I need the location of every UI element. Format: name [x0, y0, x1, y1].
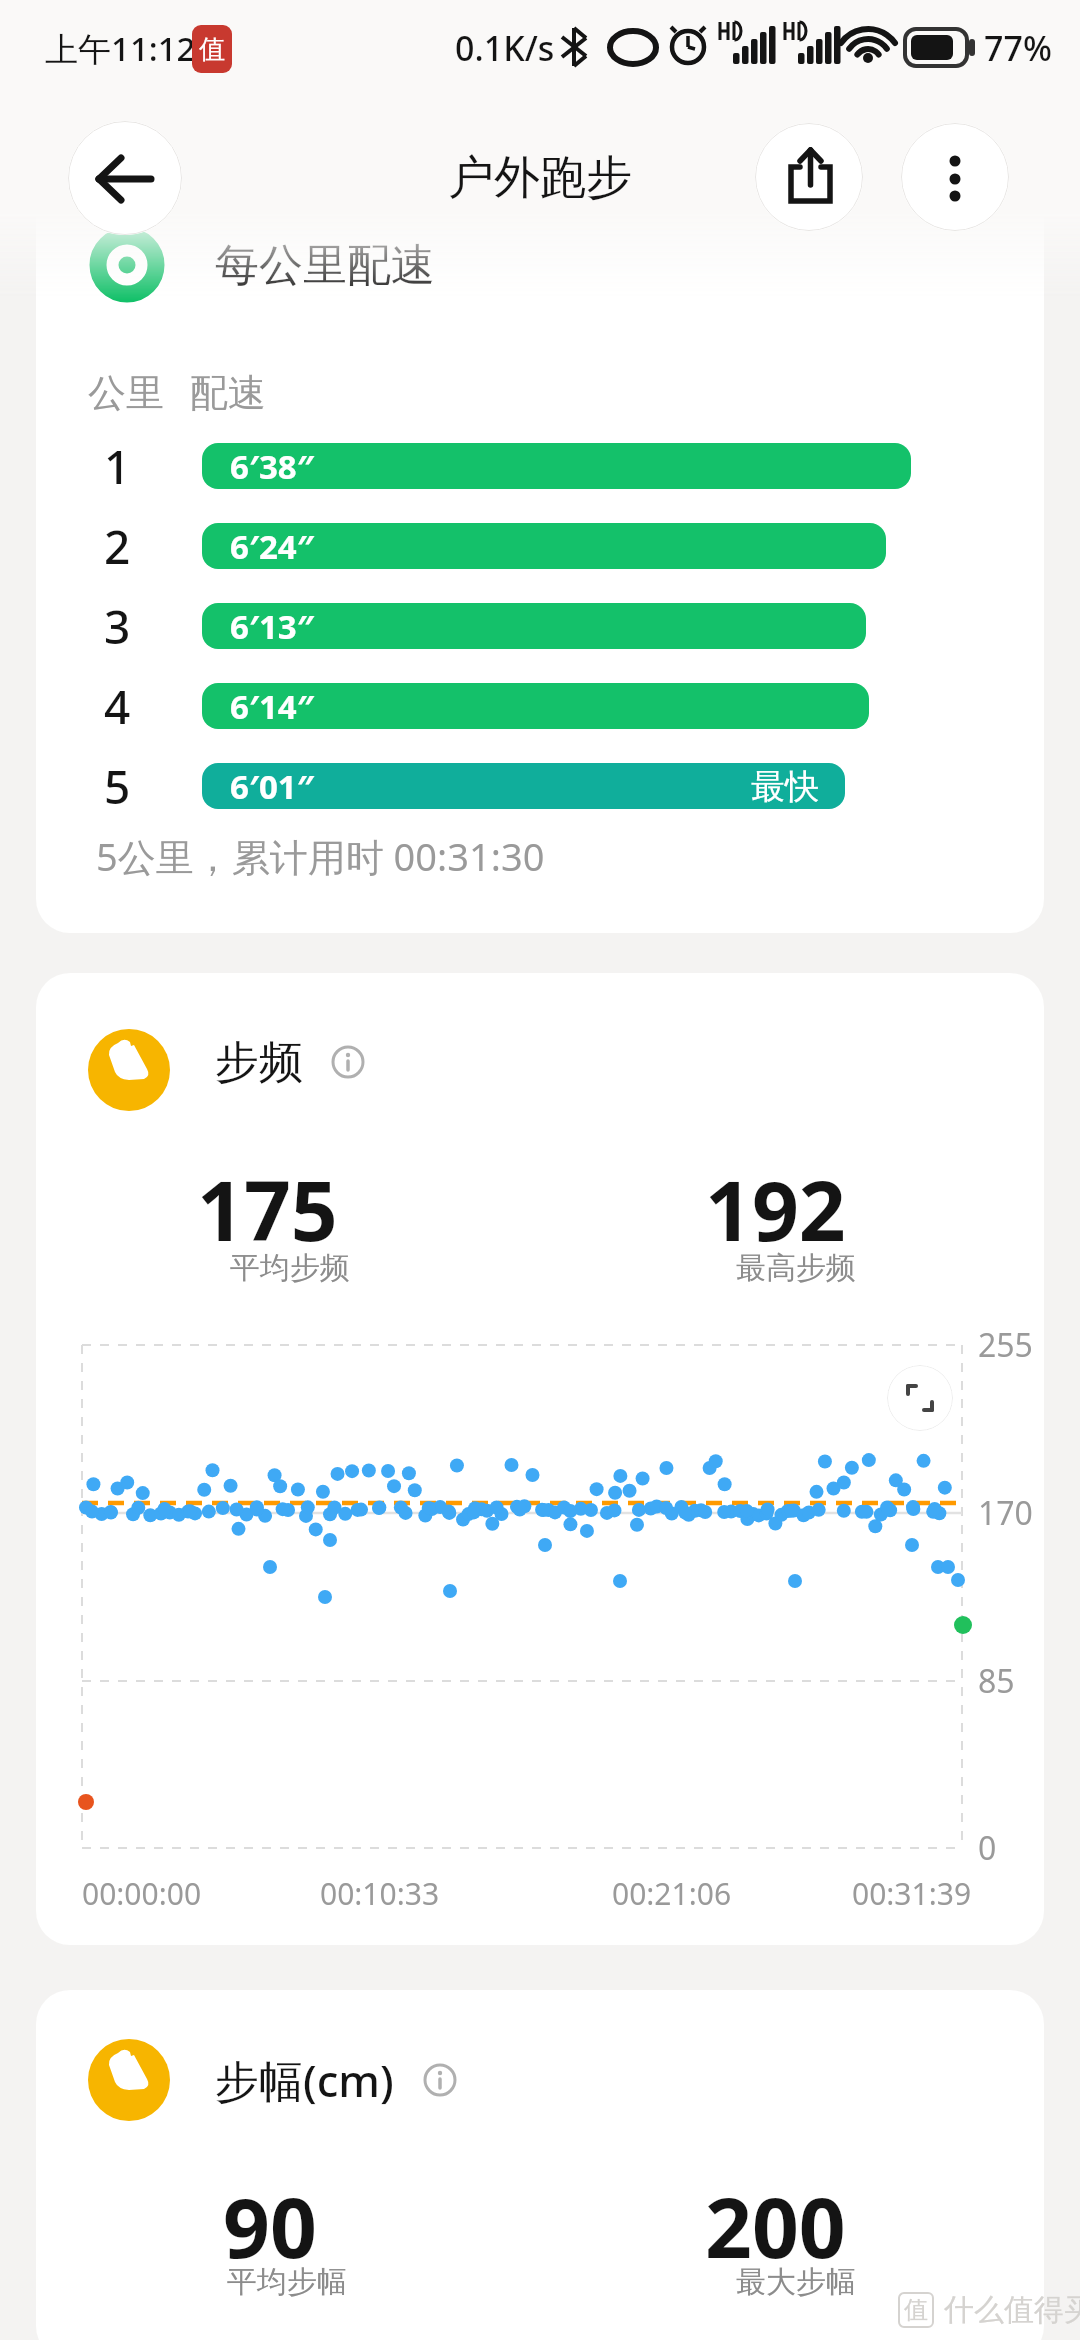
staticText: 值	[199, 33, 225, 66]
staticText: 平均步频	[230, 1249, 350, 1287]
staticText: 4	[104, 675, 131, 738]
button[interactable]	[326, 1040, 370, 1084]
staticText: 0.1K/s	[455, 25, 555, 71]
staticText: 5	[104, 755, 131, 818]
staticText: 192	[705, 1153, 846, 1243]
staticText: 上午11:12	[45, 26, 196, 71]
staticText: 00:31:39	[852, 1873, 972, 1914]
staticText: 什么值得买	[944, 2291, 1080, 2329]
button[interactable]: 6′38″	[202, 443, 911, 489]
staticText: 平均步幅	[227, 2263, 347, 2301]
button[interactable]	[901, 123, 1009, 231]
staticText: 6′13″	[230, 604, 314, 649]
staticText: 00:10:33	[320, 1873, 440, 1914]
staticText: 175	[197, 1153, 338, 1243]
button[interactable]	[68, 121, 182, 235]
button[interactable]: 6′24″	[202, 523, 886, 569]
button[interactable]	[755, 123, 863, 231]
staticText: 85	[978, 1659, 1015, 1703]
staticText: 2	[104, 515, 131, 578]
staticText: 6′38″	[230, 444, 314, 489]
staticText: 6′24″	[230, 524, 314, 569]
staticText: 户外跑步	[448, 149, 632, 207]
button[interactable]	[418, 2058, 462, 2102]
staticText: 3	[104, 595, 131, 658]
button[interactable]	[887, 1365, 953, 1431]
button[interactable]: 6′01″	[202, 763, 845, 809]
staticText: 步幅(cm)	[215, 2050, 394, 2110]
staticText: 6′01″	[230, 764, 314, 809]
staticText: 最高步频	[736, 1249, 856, 1287]
staticText: 步频	[215, 1035, 303, 1090]
staticText: 每公里配速	[215, 238, 435, 293]
staticText: 77%	[984, 25, 1052, 71]
button[interactable]: 6′14″	[202, 683, 869, 729]
staticText: 6′14″	[230, 684, 314, 729]
staticText: 1	[104, 435, 131, 498]
staticText: 最快	[751, 765, 819, 808]
staticText: 公里	[88, 369, 164, 417]
staticText: 最大步幅	[736, 2263, 856, 2301]
staticText: 值	[904, 2295, 928, 2325]
staticText: 配速	[190, 369, 266, 417]
staticText: 255	[978, 1323, 1033, 1367]
staticText: 5公里，累计用时 00:31:30	[96, 830, 545, 882]
staticText: 00:00:00	[82, 1873, 202, 1914]
staticText: 170	[978, 1491, 1033, 1535]
staticText: 00:21:06	[612, 1873, 732, 1914]
button[interactable]: 6′13″	[202, 603, 866, 649]
staticText: 200	[705, 2170, 846, 2260]
staticText: 90	[223, 2170, 317, 2260]
staticText: 0	[978, 1826, 997, 1870]
